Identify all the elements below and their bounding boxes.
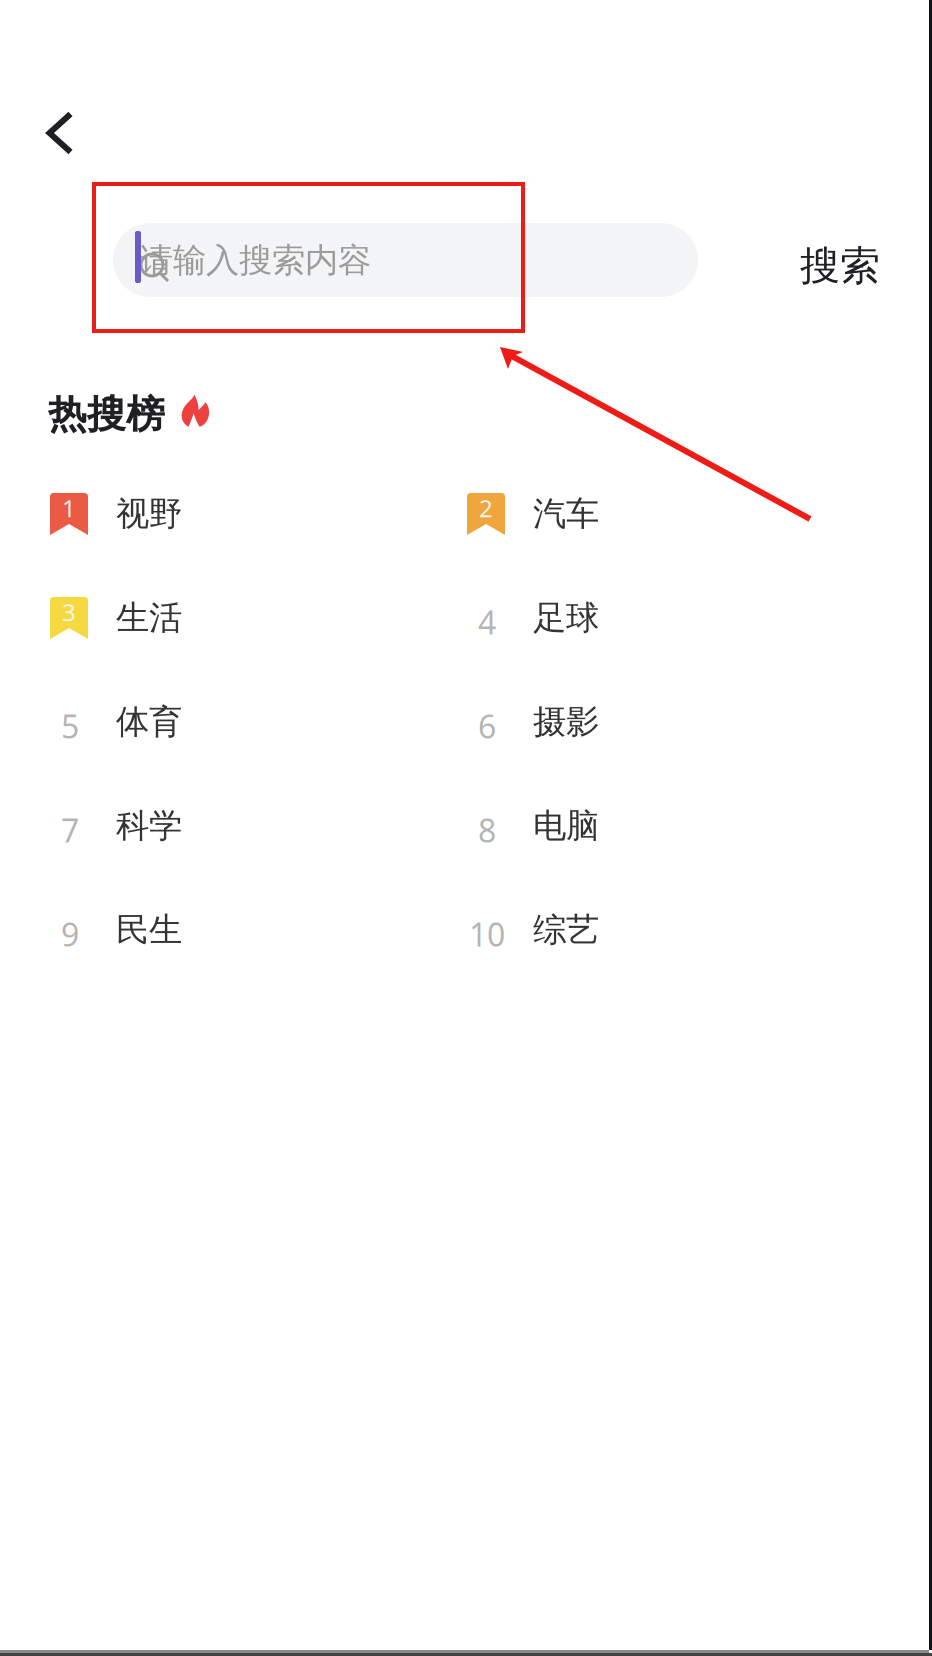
button[interactable]: 10 <box>467 900 884 960</box>
staticText: 请输入搜索内容 <box>140 240 371 281</box>
staticText: 生活 <box>116 597 182 638</box>
button[interactable]: 6 <box>467 692 884 752</box>
button[interactable]: 5 <box>50 692 467 752</box>
staticText: 1 <box>62 492 76 524</box>
staticText: 3 <box>62 596 76 628</box>
staticText: 2 <box>479 492 493 524</box>
button[interactable]: 搜索 <box>785 235 895 297</box>
staticText: 4 <box>478 601 496 643</box>
staticText: 热搜榜 <box>48 391 165 438</box>
staticText: 摄影 <box>533 701 599 742</box>
button[interactable]: 8 <box>467 796 884 856</box>
button[interactable]: 4 <box>467 588 884 648</box>
staticText: 6 <box>478 705 496 747</box>
staticText: 视野 <box>116 493 182 534</box>
staticText: 体育 <box>116 701 182 742</box>
staticText: 民生 <box>116 909 182 950</box>
button[interactable]: 3 <box>50 588 467 648</box>
staticText: 8 <box>478 809 496 851</box>
button[interactable]: 请输入搜索内容 <box>113 223 698 297</box>
staticText: 5 <box>61 705 79 747</box>
staticText: 科学 <box>116 805 182 846</box>
staticText: 9 <box>61 913 79 955</box>
button[interactable]: 1 <box>50 484 467 544</box>
staticText: 7 <box>61 809 79 851</box>
button[interactable]: 7 <box>50 796 467 856</box>
staticText: 汽车 <box>533 493 599 534</box>
button[interactable]: 2 <box>467 484 884 544</box>
button[interactable]: Back <box>20 93 100 173</box>
staticText: 综艺 <box>533 909 599 950</box>
staticText: 搜索 <box>800 241 880 290</box>
staticText: 电脑 <box>533 805 599 846</box>
staticText: 足球 <box>533 597 599 638</box>
button[interactable]: 9 <box>50 900 467 960</box>
staticText: 10 <box>469 913 505 955</box>
